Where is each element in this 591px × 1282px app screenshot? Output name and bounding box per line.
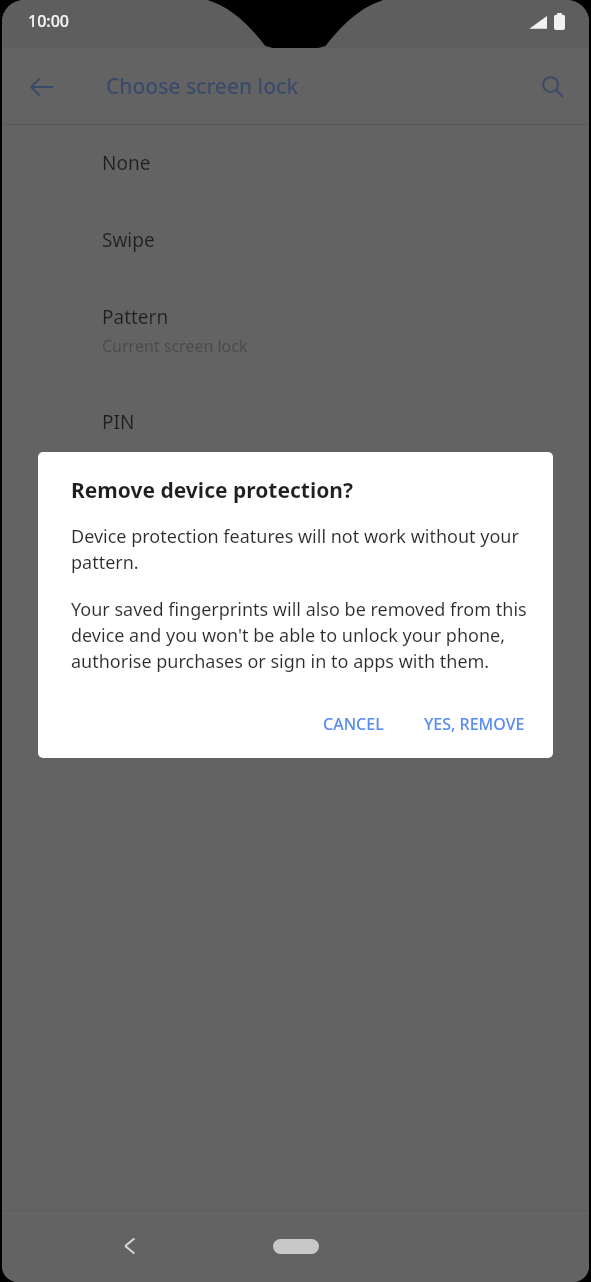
staticText: Current screen lock bbox=[102, 335, 248, 357]
button[interactable]: CANCEL bbox=[309, 704, 398, 744]
button[interactable]: Swipe bbox=[2, 201, 589, 278]
staticText: None bbox=[102, 150, 151, 176]
button[interactable]: None bbox=[2, 125, 589, 201]
button[interactable]: Pattern bbox=[2, 278, 589, 383]
staticText: CANCEL bbox=[323, 713, 384, 735]
staticText: 10:00 bbox=[28, 10, 69, 32]
button[interactable]: YES, REMOVE bbox=[410, 704, 539, 744]
staticText: Pattern bbox=[102, 304, 169, 330]
staticText: PIN bbox=[102, 409, 135, 435]
staticText: Swipe bbox=[102, 227, 155, 253]
button[interactable]: PIN bbox=[2, 383, 589, 460]
staticText: Choose screen lock bbox=[106, 72, 299, 101]
button[interactable]: Home bbox=[273, 1239, 319, 1254]
button[interactable]: Search bbox=[525, 59, 581, 115]
staticText: Device protection features will not work… bbox=[71, 524, 523, 575]
staticText: YES, REMOVE bbox=[424, 713, 525, 735]
staticText: Remove device protection? bbox=[71, 476, 354, 505]
staticText: Your saved fingerprints will also be rem… bbox=[71, 597, 529, 674]
button[interactable]: Back bbox=[102, 1218, 158, 1274]
button[interactable]: Back bbox=[14, 59, 70, 115]
